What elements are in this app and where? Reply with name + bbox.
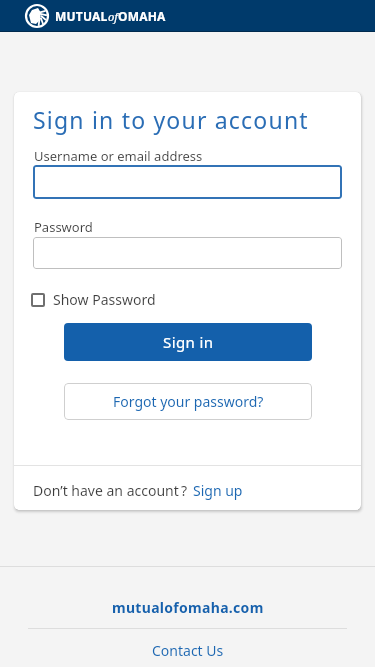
staticText: Don’t have an account ? <box>33 481 188 500</box>
staticText: Sign in to your account <box>33 104 309 135</box>
button[interactable] <box>33 237 342 269</box>
staticText: Show Password <box>53 290 156 309</box>
staticText: mutualofomaha.com <box>112 598 264 617</box>
button[interactable]: Sign in <box>64 323 312 361</box>
staticText: Contact Us <box>152 641 224 660</box>
button[interactable]: Sign up <box>193 481 243 500</box>
button[interactable]: Show Password <box>31 290 156 309</box>
staticText: Username or email address <box>34 147 203 165</box>
staticText: Forgot your password? <box>113 392 264 411</box>
button[interactable]: mutualofomaha.com <box>0 598 375 617</box>
button[interactable] <box>33 165 342 199</box>
staticText: of <box>108 9 118 24</box>
button[interactable]: Contact Us <box>0 641 375 660</box>
button[interactable]: Forgot your password? <box>64 383 312 420</box>
staticText: Password <box>34 218 93 236</box>
staticText: Sign in <box>163 332 214 352</box>
staticText: MUTUAL <box>55 8 108 24</box>
staticText: OMAHA <box>118 8 166 24</box>
